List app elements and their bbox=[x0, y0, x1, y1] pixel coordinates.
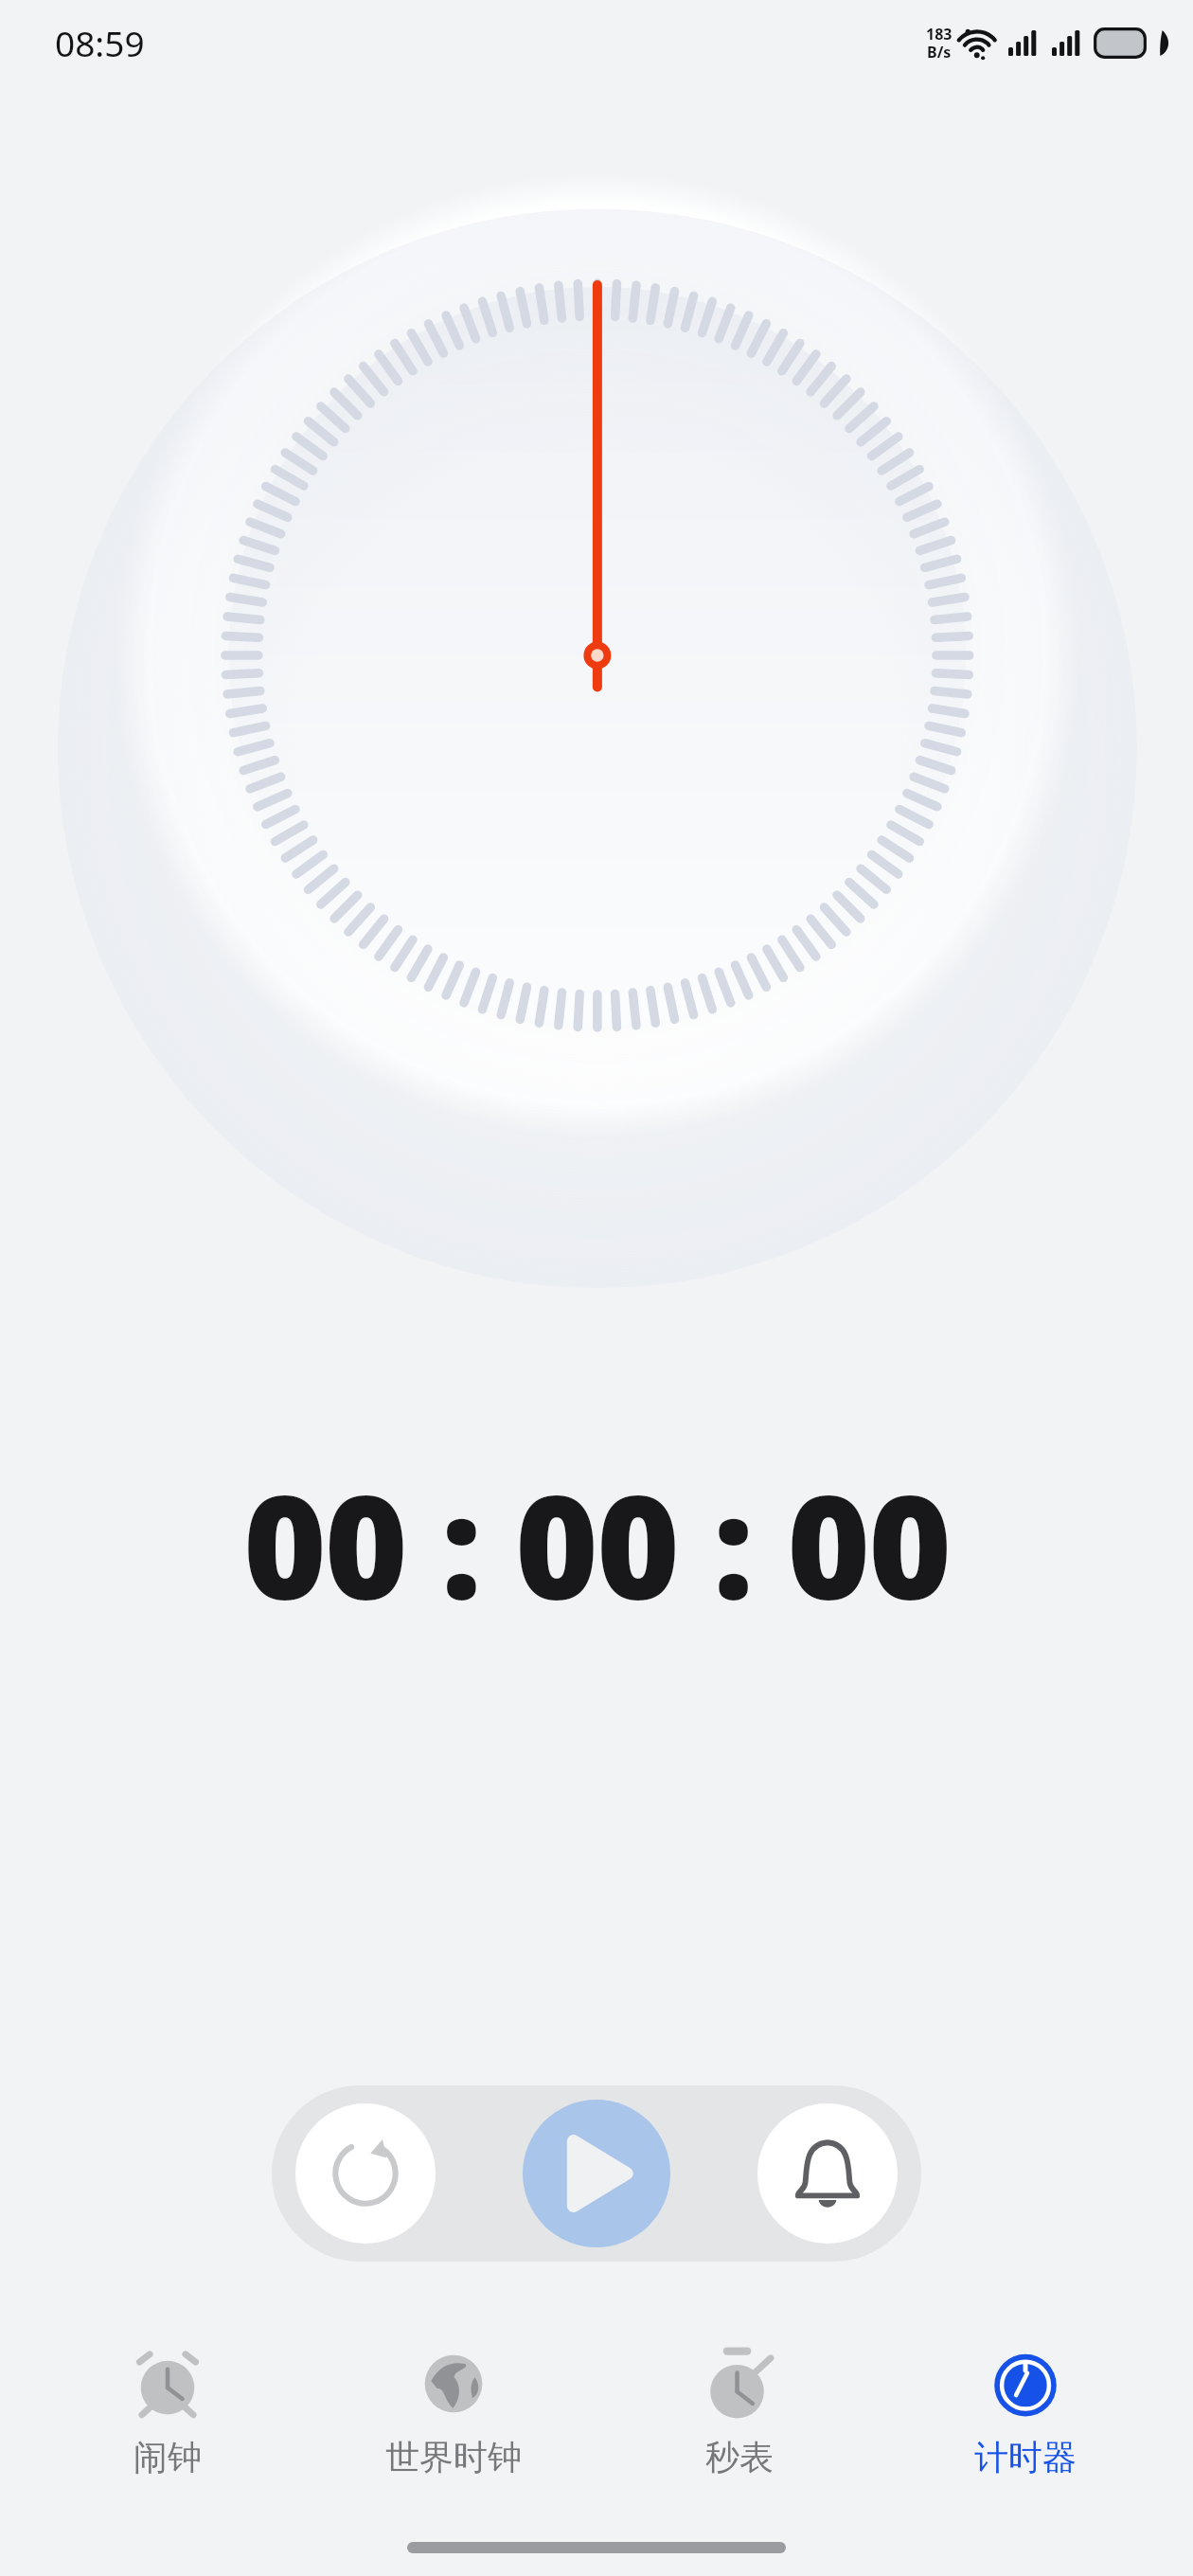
button[interactable]: Start bbox=[523, 2100, 670, 2247]
staticText: 秒表 bbox=[705, 2436, 774, 2478]
button[interactable]: Ringtone bbox=[757, 2103, 898, 2244]
button[interactable]: 秒表 bbox=[621, 2339, 858, 2484]
button[interactable]: Reset bbox=[295, 2103, 436, 2244]
staticText: 闹钟 bbox=[134, 2436, 202, 2478]
staticText: 世界时钟 bbox=[385, 2436, 522, 2478]
button[interactable]: 闹钟 bbox=[49, 2339, 286, 2484]
staticText: 183 bbox=[926, 24, 953, 45]
staticText: 08:59 bbox=[55, 19, 145, 66]
staticText: B/s bbox=[927, 42, 952, 63]
button[interactable]: 世界时钟 bbox=[335, 2339, 572, 2484]
staticText: 00 : 00 : 00 bbox=[0, 1447, 1193, 1640]
staticText: 计时器 bbox=[974, 2436, 1077, 2478]
button[interactable]: 计时器 bbox=[907, 2339, 1144, 2484]
